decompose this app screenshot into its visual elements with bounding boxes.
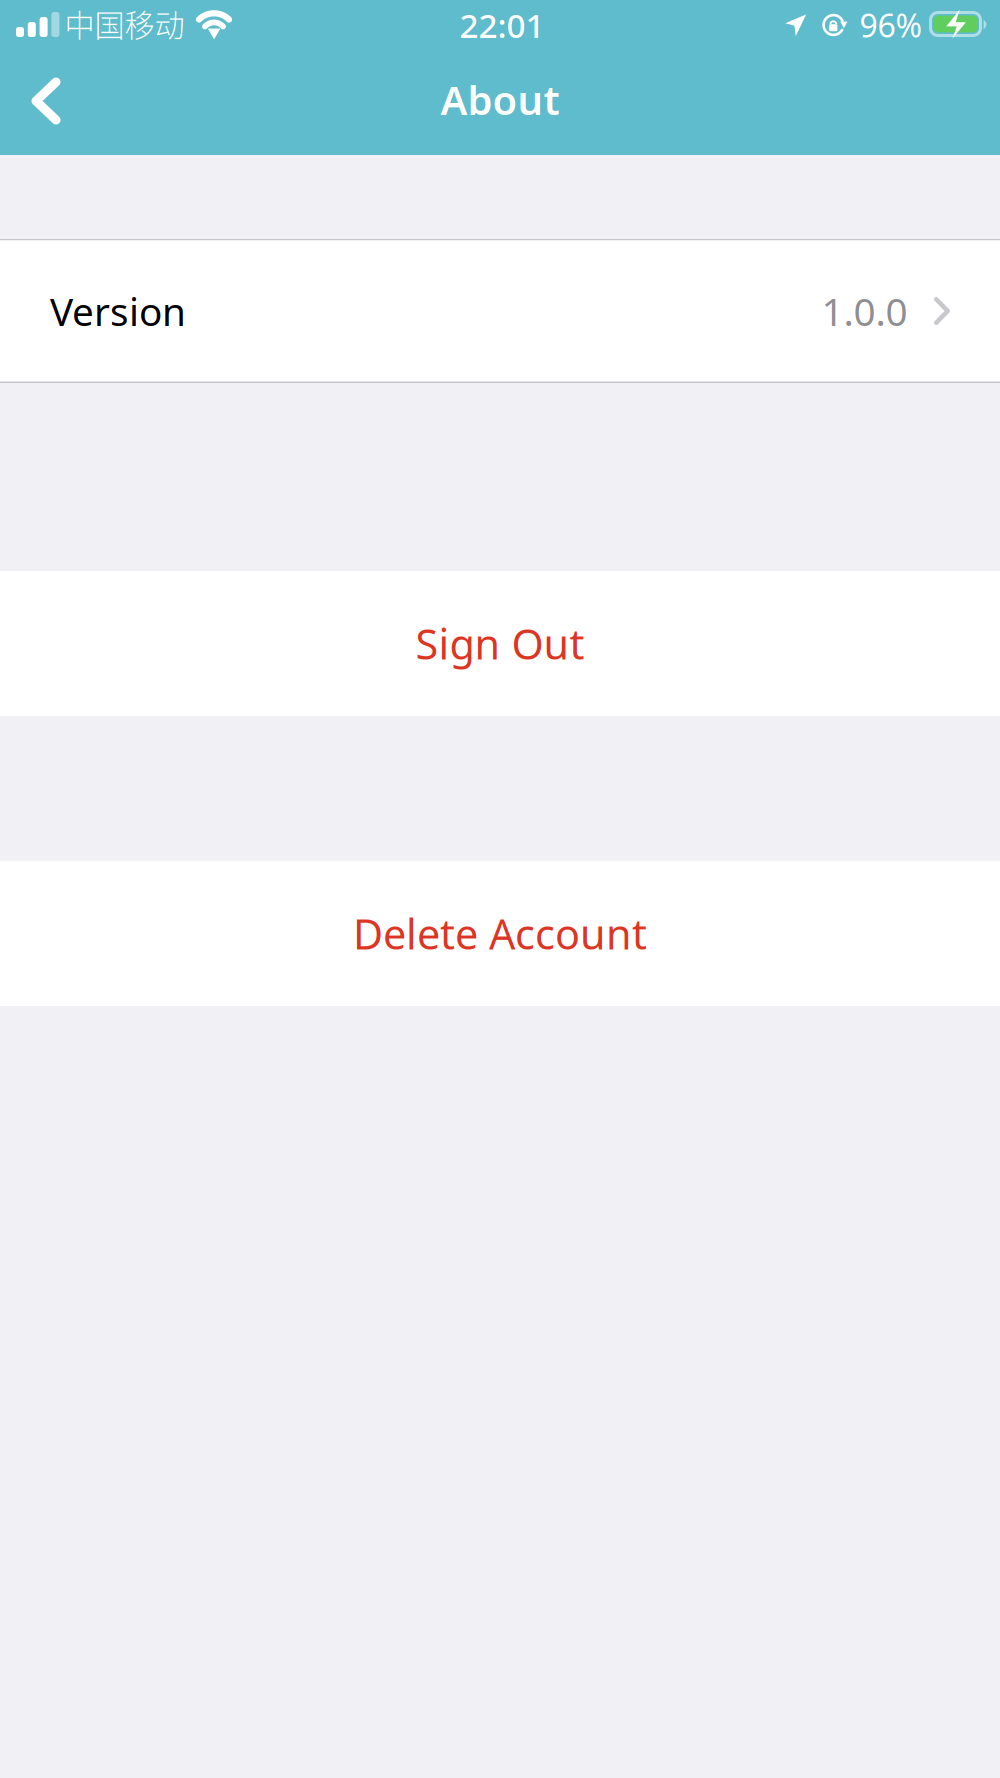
staticText: 96%: [859, 4, 922, 46]
button[interactable]: Back: [0, 55, 92, 147]
staticText: 22:01: [459, 3, 544, 47]
button[interactable]: Sign Out: [0, 571, 1000, 716]
staticText: Version: [50, 285, 186, 337]
staticText: Sign Out: [415, 616, 584, 671]
staticText: About: [440, 73, 559, 126]
staticText: Delete Account: [353, 906, 647, 961]
button[interactable]: Delete Account: [0, 861, 1000, 1006]
staticText: 中国移动: [64, 2, 184, 45]
button[interactable]: Version: [0, 239, 1000, 383]
staticText: 1.0.0: [821, 285, 907, 337]
